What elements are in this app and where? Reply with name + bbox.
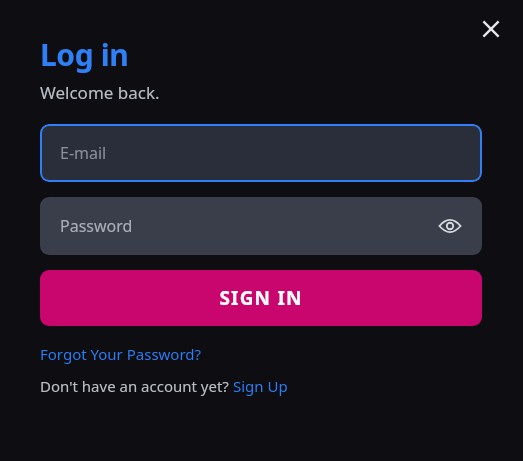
staticText: Welcome back. [40, 81, 160, 104]
button[interactable]: SIGN IN [40, 270, 482, 326]
button[interactable]: Show password [432, 208, 468, 244]
button[interactable]: Sign Up [233, 376, 288, 396]
button[interactable]: Password [40, 197, 482, 255]
staticText: Log in [40, 34, 129, 75]
staticText: SIGN IN [219, 285, 303, 311]
staticText: E-mail [60, 142, 107, 164]
button[interactable]: E-mail [40, 124, 482, 182]
button[interactable]: Forgot Your Password? [40, 344, 202, 364]
staticText: Sign Up [233, 376, 288, 396]
staticText: Forgot Your Password? [40, 344, 202, 364]
staticText: Password [60, 215, 133, 237]
button[interactable]: Close [471, 9, 511, 49]
staticText: Don't have an account yet? [40, 376, 233, 396]
